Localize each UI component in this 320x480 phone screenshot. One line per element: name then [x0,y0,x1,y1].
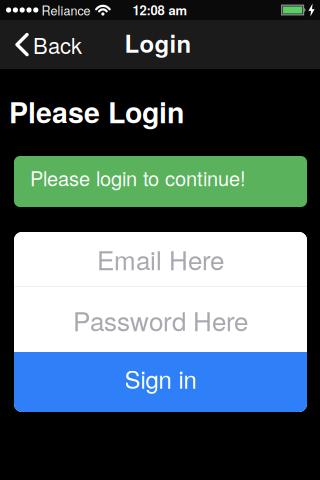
button[interactable]: Password Here [14,287,307,352]
staticText: Password Here [73,301,248,339]
staticText: Login [124,26,191,60]
staticText: Reliance [41,1,90,19]
staticText: Email Here [97,240,224,278]
staticText: Sign in [124,361,196,396]
staticText: Please login to continue! [30,163,246,192]
staticText: Please Login [9,91,184,132]
button[interactable]: Email Here [14,232,307,286]
staticText: 12:08 am [132,1,187,19]
button[interactable]: Back [0,29,82,60]
staticText: Back [33,29,82,60]
button[interactable]: Sign in [14,352,307,412]
